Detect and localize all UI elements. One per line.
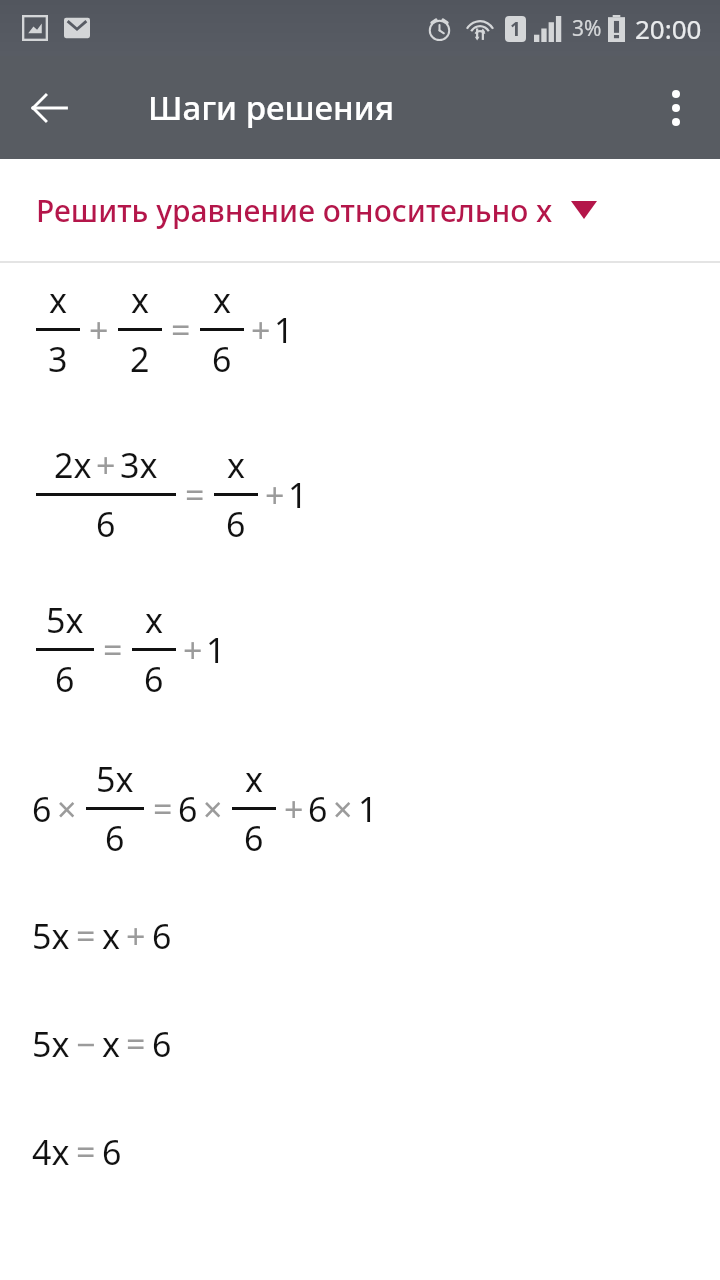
staticText: + — [265, 472, 285, 518]
staticText: − — [76, 1021, 96, 1067]
staticText: Решить уравнение относительно x — [36, 190, 553, 231]
staticText: 6 — [105, 815, 125, 861]
staticText: 5x — [32, 1021, 70, 1067]
staticText: × — [57, 786, 77, 832]
button[interactable]: 6 — [0, 756, 720, 861]
staticText: 1 — [358, 786, 378, 832]
staticText: 5x — [46, 597, 84, 643]
button[interactable]: 4x — [0, 1129, 720, 1175]
staticText: 6 — [102, 1129, 122, 1175]
button[interactable]: Back — [18, 77, 80, 139]
staticText: × — [333, 786, 353, 832]
staticText: = — [126, 1021, 146, 1067]
staticText: 4x — [32, 1129, 70, 1175]
staticText: 6 — [96, 501, 116, 547]
staticText: 1 — [206, 627, 226, 673]
staticText: 1 — [274, 307, 294, 353]
staticText: + — [89, 307, 109, 353]
staticText: x — [49, 277, 67, 323]
staticText: x — [213, 277, 231, 323]
staticText: 20:00 — [635, 11, 702, 46]
button[interactable]: 5x — [0, 913, 720, 959]
staticText: = — [171, 307, 191, 353]
staticText: 6 — [212, 336, 232, 382]
staticText: 6 — [152, 913, 172, 959]
staticText: 6 — [55, 656, 75, 702]
staticText: x — [102, 1021, 120, 1067]
staticText: 6 — [144, 656, 164, 702]
staticText: 2x — [54, 442, 92, 488]
staticText: 3x — [120, 442, 158, 488]
staticText: 6 — [152, 1021, 172, 1067]
button[interactable]: More options — [646, 78, 706, 138]
staticText: x — [102, 913, 120, 959]
staticText: + — [251, 307, 271, 353]
staticText: = — [76, 913, 96, 959]
staticText: 5x — [96, 756, 134, 802]
button[interactable]: x — [0, 277, 720, 382]
staticText: 6 — [308, 786, 328, 832]
staticText: 6 — [32, 786, 52, 832]
staticText: × — [203, 786, 223, 832]
staticText: 6 — [244, 815, 264, 861]
staticText: x — [227, 442, 245, 488]
staticText: 6 — [178, 786, 198, 832]
staticText: + — [183, 627, 203, 673]
staticText: = — [185, 472, 205, 518]
staticText: x — [145, 597, 163, 643]
staticText: 6 — [226, 501, 246, 547]
staticText: 1 — [510, 16, 521, 42]
button[interactable]: 2x — [0, 442, 720, 547]
staticText: + — [284, 786, 304, 832]
staticText: x — [131, 277, 149, 323]
button[interactable]: 5x — [0, 1021, 720, 1067]
staticText: = — [103, 627, 123, 673]
staticText: + — [126, 913, 146, 959]
staticText: 5x — [32, 913, 70, 959]
staticText: + — [96, 442, 116, 488]
staticText: Шаги решения — [148, 85, 395, 130]
staticText: 3 — [48, 336, 68, 382]
staticText: = — [153, 786, 173, 832]
staticText: 1 — [288, 472, 308, 518]
staticText: 3% — [572, 14, 602, 43]
button[interactable]: Решить уравнение относительно x — [0, 159, 720, 261]
staticText: = — [76, 1129, 96, 1175]
staticText: 2 — [130, 336, 150, 382]
button[interactable]: 5x — [0, 597, 720, 702]
staticText: x — [245, 756, 263, 802]
